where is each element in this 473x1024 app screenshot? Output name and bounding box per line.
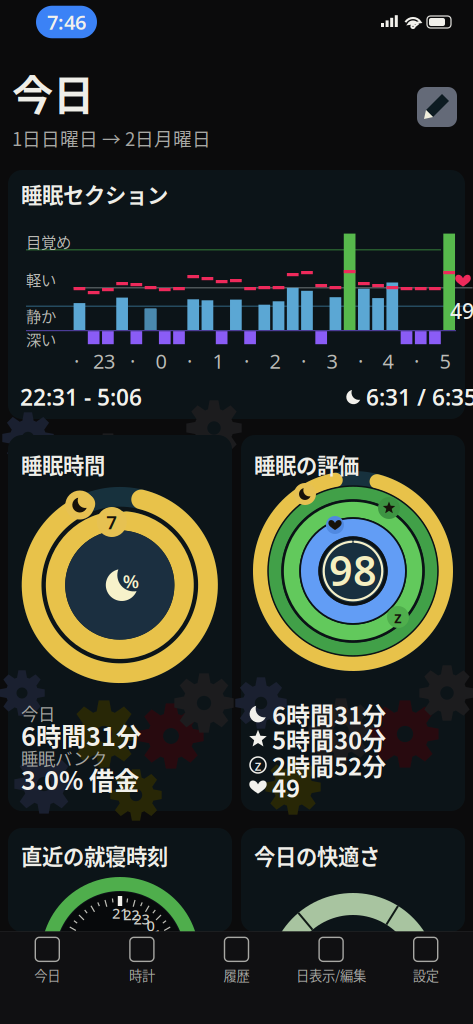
staticText: 7:46 <box>47 9 86 35</box>
staticText: · <box>130 348 135 374</box>
staticText: 睡眠バンク <box>21 745 107 771</box>
staticText: % <box>123 569 139 593</box>
staticText: · <box>74 348 79 374</box>
staticText: 静か <box>26 304 56 327</box>
staticText: 49 <box>450 296 473 325</box>
staticText: 2 <box>269 348 280 374</box>
staticText: · <box>244 348 249 374</box>
button[interactable]: Edit <box>414 84 460 130</box>
staticText: 睡眠の評価 <box>254 449 359 480</box>
staticText: 4 <box>382 348 393 374</box>
staticText: 2時間52分 <box>272 748 386 782</box>
button[interactable]: 時計 <box>95 937 189 985</box>
staticText: 0 <box>146 916 154 935</box>
button[interactable]: 履歴 <box>189 937 284 985</box>
staticText: 目覚め <box>26 230 71 252</box>
staticText: z <box>394 606 402 628</box>
staticText: · <box>301 348 306 374</box>
staticText: 22 <box>123 905 139 924</box>
staticText: 5 <box>439 348 450 374</box>
staticText: · <box>414 348 419 374</box>
staticText: 日表示/編集 <box>296 965 366 985</box>
staticText: 1 <box>212 348 223 374</box>
staticText: 睡眠時間 <box>21 449 105 480</box>
staticText: 0 <box>155 348 166 374</box>
staticText: 設定 <box>413 965 439 985</box>
staticText: · <box>358 348 363 374</box>
staticText: 6:31 / 6:35 <box>366 382 473 412</box>
staticText: 今日 <box>21 700 55 726</box>
staticText: 98 <box>329 543 377 597</box>
staticText: 今日の快適さ <box>254 840 380 871</box>
button[interactable]: 設定 <box>378 937 473 985</box>
button[interactable]: 今日 <box>0 937 95 985</box>
staticText: 今日 <box>34 965 60 985</box>
staticText: 軽い <box>26 268 56 290</box>
staticText: 時計 <box>129 965 155 985</box>
staticText: 6時間31分 <box>21 717 141 753</box>
staticText: 3.0% 借金 <box>21 761 139 797</box>
staticText: 6時間31分 <box>272 697 386 731</box>
staticText: 1日日曜日 → 2日月曜日 <box>12 124 211 151</box>
staticText: 49 <box>272 770 300 804</box>
staticText: · <box>187 348 192 374</box>
staticText: 22:31 - 5:06 <box>20 382 142 412</box>
staticText: 3 <box>326 348 337 374</box>
staticText: 直近の就寝時刻 <box>21 840 168 871</box>
staticText: 1 <box>153 925 161 944</box>
staticText: 23 <box>93 348 115 374</box>
staticText: 深い <box>26 328 56 350</box>
staticText: z <box>254 755 261 775</box>
button[interactable]: 日表示/編集 <box>284 937 378 985</box>
staticText: 7 <box>106 510 117 534</box>
staticText: 履歴 <box>223 965 249 985</box>
staticText: 23 <box>133 909 149 928</box>
staticText: 今日 <box>12 63 94 122</box>
staticText: 睡眠セクション <box>21 179 168 209</box>
staticText: 5時間30分 <box>272 722 386 756</box>
staticText: 21 <box>112 903 128 923</box>
